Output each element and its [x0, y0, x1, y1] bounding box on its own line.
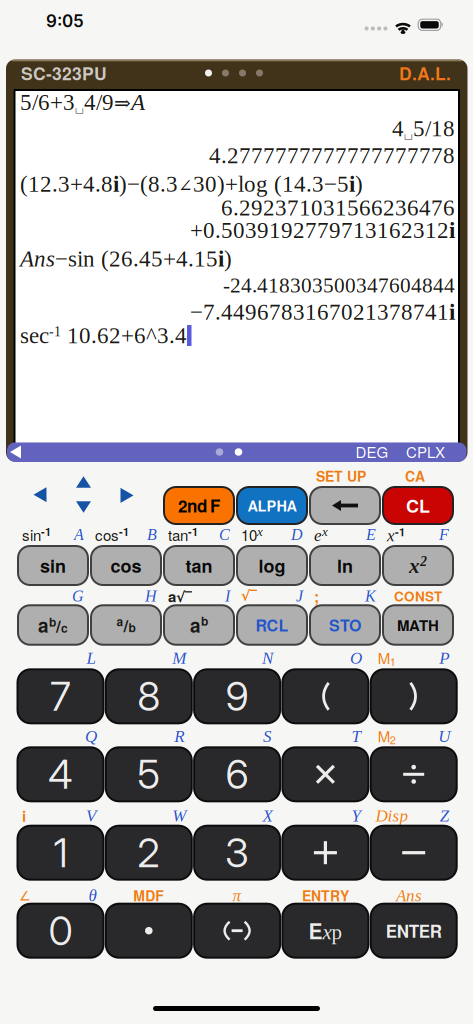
- staticText: SET UP: [316, 466, 366, 486]
- button[interactable]: Scroll left: [7, 442, 24, 461]
- button[interactable]: 8: [106, 669, 192, 723]
- staticText: 9:05: [46, 11, 84, 31]
- staticText: Exp: [308, 916, 342, 945]
- staticText: π: [233, 886, 242, 905]
- staticText: 9: [226, 672, 249, 720]
- staticText: V: [86, 806, 96, 825]
- button[interactable]: Cursor right: [117, 485, 136, 506]
- staticText: SC-323PU: [21, 60, 107, 86]
- button[interactable]: close paren: [371, 669, 457, 723]
- staticText: N: [262, 649, 273, 667]
- staticText: 6.292371031566236476: [221, 195, 455, 221]
- button[interactable]: minus: [371, 826, 457, 880]
- staticText: 4.2777777777777777778: [209, 143, 455, 168]
- staticText: sec-1 10.62+6^3.4: [20, 323, 187, 348]
- staticText: 6: [226, 750, 249, 798]
- staticText: I: [225, 587, 230, 605]
- staticText: sin: [40, 553, 66, 578]
- staticText: H: [145, 587, 157, 605]
- button[interactable]: a/b: [91, 605, 161, 645]
- button[interactable]: log: [237, 546, 307, 585]
- staticText: 5: [137, 750, 160, 798]
- staticText: cos: [110, 553, 141, 578]
- button[interactable]: 1: [17, 826, 103, 880]
- staticText: Z: [440, 806, 449, 825]
- staticText: G: [72, 587, 84, 605]
- staticText: CL: [406, 493, 430, 518]
- staticText: S: [263, 727, 272, 746]
- button[interactable]: 4: [17, 747, 103, 801]
- staticText: Ans−sin (26.45+4.15i): [20, 246, 232, 271]
- staticText: CPLX: [406, 441, 445, 462]
- button[interactable]: 7: [17, 669, 103, 723]
- button[interactable]: RCL: [237, 605, 307, 645]
- staticText: θ: [88, 886, 96, 905]
- staticText: B: [147, 526, 157, 543]
- button[interactable]: 2: [106, 826, 192, 880]
- button[interactable]: open paren: [282, 669, 368, 723]
- staticText: D.A.L.: [399, 60, 451, 86]
- button[interactable]: Cursor down: [73, 498, 94, 516]
- staticText: -24.418303500347604844: [223, 273, 455, 297]
- staticText: L: [86, 649, 95, 667]
- button[interactable]: 2ndF: [164, 487, 234, 524]
- staticText: ;: [314, 584, 319, 607]
- staticText: ALPHA: [247, 495, 296, 516]
- staticText: 5/6+3␣4/9⇒A: [20, 90, 145, 116]
- staticText: (12.3+4.8i)−(8.3∠30)+log (14.3−5i): [20, 171, 363, 196]
- button[interactable]: plus: [282, 826, 368, 880]
- button[interactable]: negate: [194, 904, 280, 958]
- button[interactable]: a b/c: [18, 605, 88, 645]
- button[interactable]: ln: [310, 546, 380, 585]
- button[interactable]: decimal point: [106, 904, 192, 958]
- staticText: tan: [185, 553, 212, 578]
- staticText: 10x: [241, 524, 263, 545]
- staticText: O: [350, 649, 362, 667]
- staticText: Disp: [375, 806, 408, 825]
- staticText: cos-1: [95, 524, 129, 545]
- button[interactable]: 6: [194, 747, 280, 801]
- staticText: 3: [225, 828, 249, 877]
- button[interactable]: 3: [194, 826, 280, 880]
- button[interactable]: x squared: [383, 546, 453, 585]
- staticText: 0: [48, 906, 72, 955]
- button[interactable]: Exp: [282, 904, 368, 958]
- button[interactable]: a to the b: [164, 605, 234, 645]
- staticText: J: [296, 587, 303, 605]
- staticText: T: [351, 727, 360, 746]
- staticText: X: [263, 806, 273, 825]
- staticText: 4␣5/18: [392, 116, 455, 142]
- button[interactable]: CL: [383, 487, 453, 524]
- button[interactable]: Cursor left: [30, 484, 49, 505]
- staticText: ab: [190, 612, 208, 638]
- button[interactable]: 9: [194, 669, 280, 723]
- button[interactable]: sin: [18, 546, 88, 585]
- button[interactable]: tan: [164, 546, 234, 585]
- staticText: tan-1: [168, 524, 198, 545]
- staticText: A: [74, 526, 84, 543]
- staticText: −7.4496783167021378741i: [190, 300, 455, 324]
- staticText: log: [258, 553, 285, 578]
- staticText: K: [365, 587, 376, 605]
- staticText: i: [22, 805, 26, 826]
- button[interactable]: 0: [17, 904, 103, 958]
- button[interactable]: Cursor up: [73, 473, 94, 491]
- button[interactable]: divide: [371, 747, 457, 801]
- staticText: x2: [409, 554, 427, 577]
- button[interactable]: Backspace: [310, 487, 380, 524]
- staticText: ENTRY: [302, 885, 349, 905]
- button[interactable]: multiply: [282, 747, 368, 801]
- staticText: ab/c: [38, 612, 68, 638]
- staticText: E: [366, 526, 376, 543]
- button[interactable]: MATH: [383, 605, 453, 645]
- button[interactable]: ENTER: [371, 904, 457, 958]
- staticText: MATH: [397, 614, 439, 636]
- staticText: W: [172, 806, 186, 825]
- button[interactable]: ALPHA: [237, 487, 307, 524]
- button[interactable]: cos: [91, 546, 161, 585]
- staticText: a√‾: [168, 585, 192, 606]
- staticText: Q: [85, 727, 97, 746]
- button[interactable]: STO: [310, 605, 380, 645]
- staticText: sin-1: [22, 524, 51, 545]
- button[interactable]: 5: [106, 747, 192, 801]
